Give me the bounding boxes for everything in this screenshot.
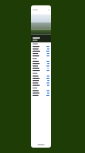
button[interactable]: More bbox=[48, 9, 49, 10]
button[interactable] bbox=[32, 50, 49, 52]
button[interactable] bbox=[32, 52, 49, 55]
button[interactable] bbox=[32, 65, 49, 67]
button[interactable] bbox=[32, 67, 49, 69]
button[interactable] bbox=[32, 84, 49, 86]
button[interactable] bbox=[32, 75, 49, 77]
button[interactable] bbox=[32, 90, 49, 92]
button[interactable] bbox=[32, 45, 49, 48]
button[interactable] bbox=[32, 60, 49, 62]
button[interactable] bbox=[32, 82, 49, 84]
button[interactable] bbox=[32, 94, 49, 96]
button[interactable] bbox=[32, 62, 49, 65]
button[interactable] bbox=[32, 69, 49, 72]
button[interactable] bbox=[32, 48, 49, 50]
button[interactable] bbox=[32, 9, 38, 10]
button[interactable] bbox=[32, 55, 49, 57]
button[interactable] bbox=[32, 79, 49, 82]
button[interactable] bbox=[32, 77, 49, 79]
button[interactable] bbox=[32, 92, 49, 94]
